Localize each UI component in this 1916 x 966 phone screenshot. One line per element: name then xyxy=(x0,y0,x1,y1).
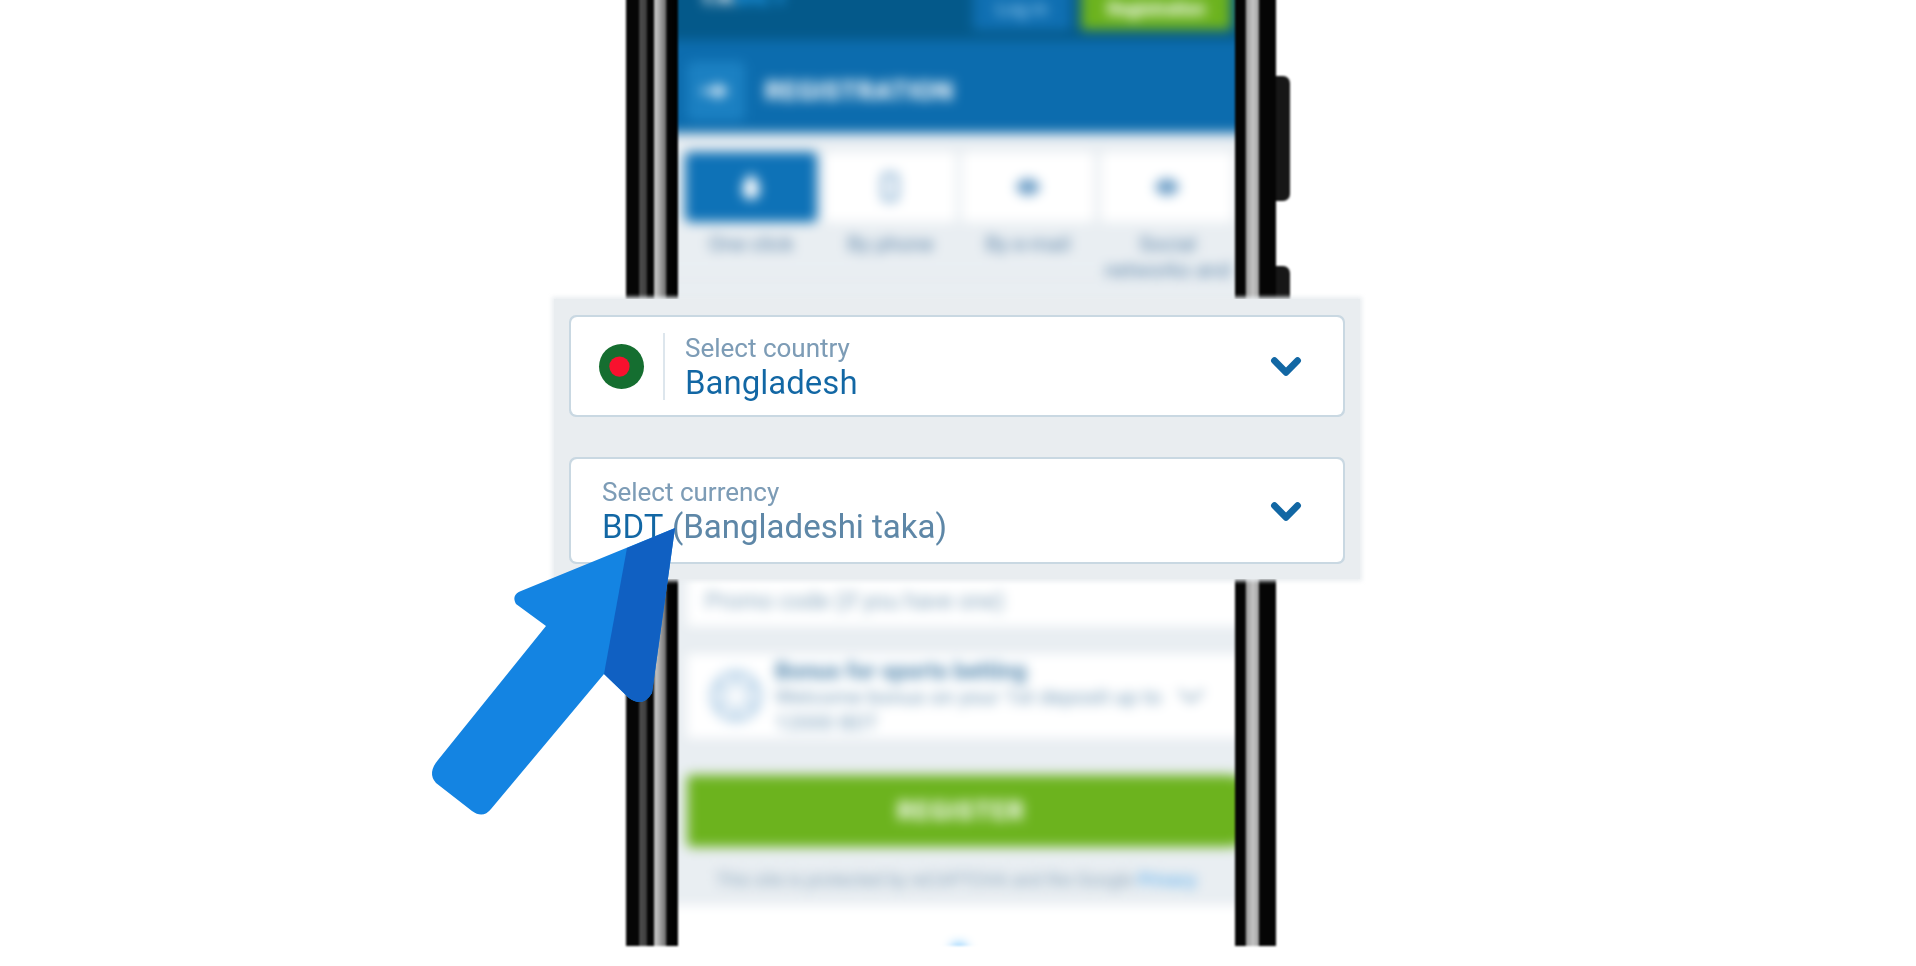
staticText: Registration xyxy=(1107,0,1206,19)
button[interactable]: Select currency xyxy=(571,459,1343,562)
staticText: 1X xyxy=(698,0,735,11)
staticText: BDT xyxy=(602,507,672,546)
staticText: Bangladesh xyxy=(685,363,858,402)
staticText: One click xyxy=(708,232,794,257)
staticText: By e-mail xyxy=(985,232,1071,257)
staticText: This site is protected by reCAPTCHA and … xyxy=(716,869,1138,890)
button[interactable]: By e-mail xyxy=(962,152,1094,222)
staticText: Promo code (if you have one) xyxy=(705,588,1005,615)
staticText: BET xyxy=(735,0,790,11)
button[interactable]: By phone xyxy=(824,152,956,222)
button[interactable]: Select country xyxy=(571,317,1343,415)
staticText: Select country xyxy=(685,333,850,363)
button[interactable]: Expand Select currency xyxy=(1257,482,1315,540)
button[interactable]: Betslip xyxy=(915,905,1003,946)
staticText: Welcome bonus on your 1st deposit up to … xyxy=(775,685,1162,735)
staticText: Log in xyxy=(996,0,1048,19)
staticText: Bonus for sports betting xyxy=(775,658,1027,685)
button[interactable]: Back xyxy=(687,61,745,121)
staticText: REGISTER xyxy=(897,796,1025,826)
staticText: By phone xyxy=(847,232,934,257)
staticText: Select currency xyxy=(602,477,780,507)
button[interactable]: Social networks and xyxy=(1101,152,1233,222)
button[interactable]: Expand Select country xyxy=(1257,337,1315,395)
button[interactable]: One click xyxy=(685,152,817,222)
staticText: Social networks and xyxy=(1104,232,1231,282)
staticText: REGISTRATION xyxy=(765,76,954,106)
staticText: (Bangladeshi taka) xyxy=(672,507,947,546)
staticText: Privacy xyxy=(1138,869,1197,890)
